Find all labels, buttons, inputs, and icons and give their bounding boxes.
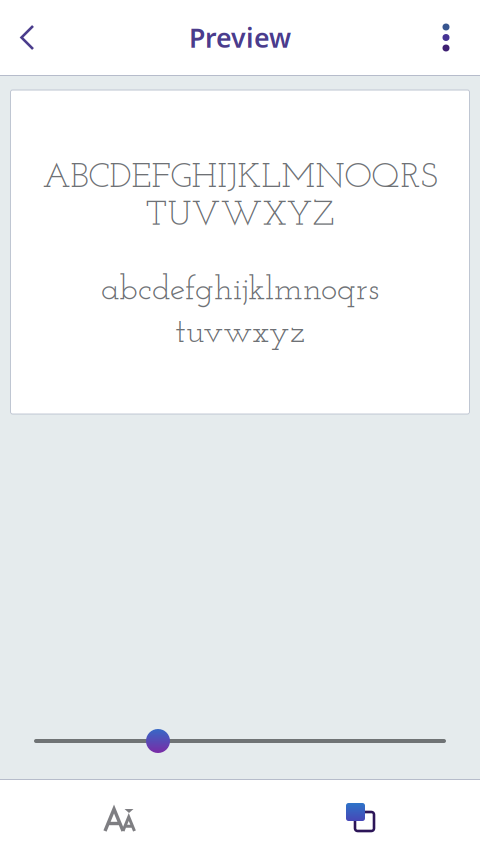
staticText: abcdefghijklmnoqrs: [101, 273, 379, 308]
staticText: TUVWXYZ: [145, 199, 334, 233]
button[interactable]: Back: [0, 0, 54, 74]
button[interactable]: Compare fonts: [240, 780, 480, 854]
button[interactable]: Text size: [0, 780, 240, 854]
staticText: Preview: [189, 20, 291, 55]
staticText: tuvwxyz: [175, 316, 305, 351]
button[interactable]: More options: [412, 0, 480, 74]
staticText: ABCDEFGHIJKLMNOQRS: [42, 161, 437, 196]
